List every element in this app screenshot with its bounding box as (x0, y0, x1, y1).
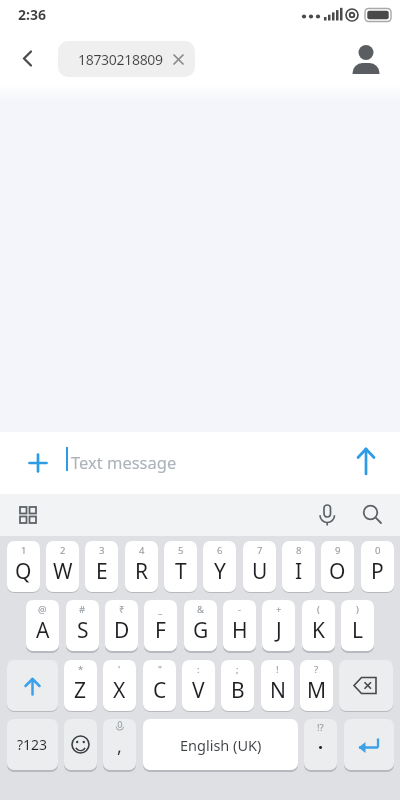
button[interactable]: _ (144, 600, 177, 651)
staticText: O (329, 557, 346, 586)
staticText: 3 (99, 544, 105, 557)
staticText: 2 (60, 544, 66, 557)
staticText: X (113, 676, 126, 705)
staticText: 1 (21, 544, 27, 557)
staticText: # (79, 603, 86, 616)
staticText: S (77, 616, 89, 645)
staticText: C (153, 676, 167, 705)
staticText: P (371, 557, 384, 586)
staticText: !? (317, 721, 324, 734)
staticText: G (193, 616, 209, 645)
button[interactable]: 0 (361, 541, 394, 592)
staticText: * (78, 663, 84, 676)
button[interactable]: @ (26, 600, 59, 651)
staticText: & (197, 603, 204, 616)
button[interactable]: : (182, 660, 215, 711)
button[interactable]: , (103, 719, 136, 770)
button[interactable] (339, 660, 393, 711)
staticText: F (155, 616, 166, 645)
staticText: E (96, 557, 108, 586)
button[interactable] (12, 499, 44, 531)
button[interactable]: + (262, 600, 295, 651)
button[interactable]: # (66, 600, 99, 651)
staticText: 6 (217, 544, 223, 557)
staticText: + (276, 603, 282, 616)
staticText: V (192, 676, 205, 705)
button[interactable]: ?123 (7, 719, 58, 770)
staticText: 18730218809 (78, 50, 163, 69)
staticText: T (175, 557, 187, 586)
button[interactable] (311, 499, 343, 531)
button[interactable]: ; (221, 660, 254, 711)
button[interactable]: ? (300, 660, 333, 711)
staticText: : (197, 663, 200, 676)
staticText: ) (356, 603, 359, 616)
button[interactable]: " (143, 660, 176, 711)
button[interactable]: 6 (203, 541, 236, 592)
staticText: 2:36 (18, 5, 46, 24)
button[interactable]: 8 (282, 541, 315, 592)
staticText: Z (74, 676, 87, 705)
staticText: ; (236, 663, 239, 676)
button[interactable] (64, 719, 97, 770)
staticText: _ (158, 603, 163, 616)
staticText: U (252, 557, 268, 586)
button[interactable]: 7 (243, 541, 276, 592)
button[interactable]: 5 (164, 541, 197, 592)
staticText: M (307, 676, 327, 705)
button[interactable]: * (64, 660, 97, 711)
button[interactable]: & (184, 600, 217, 651)
button[interactable] (344, 719, 394, 770)
button[interactable] (20, 445, 56, 481)
button[interactable]: ) (341, 600, 374, 651)
button[interactable]: 18730218809 (58, 41, 195, 77)
staticText: H (232, 616, 248, 645)
staticText: L (352, 616, 364, 645)
staticText: J (276, 616, 282, 645)
button[interactable]: ₹ (105, 600, 138, 651)
staticText: - (238, 603, 242, 616)
staticText: W (53, 557, 73, 586)
staticText: @ (38, 603, 47, 616)
button[interactable]: ! (261, 660, 294, 711)
staticText: ! (276, 663, 279, 676)
button[interactable]: 3 (85, 541, 118, 592)
staticText: Y (214, 557, 226, 586)
staticText: N (270, 676, 286, 705)
button[interactable]: 9 (321, 541, 354, 592)
staticText: 0 (375, 544, 381, 557)
staticText: A (36, 616, 50, 645)
staticText: D (114, 616, 130, 645)
button[interactable]: ' (103, 660, 136, 711)
staticText: ?123 (17, 735, 48, 754)
button[interactable]: ( (302, 600, 335, 651)
staticText: 5 (178, 544, 184, 557)
button[interactable]: !? (304, 719, 337, 770)
staticText: 8 (296, 544, 302, 557)
staticText: ₹ (119, 603, 125, 616)
staticText: 4 (139, 544, 145, 557)
staticText: . (318, 730, 324, 755)
button[interactable]: English (UK) (143, 719, 298, 770)
staticText: " (158, 663, 162, 676)
staticText: ( (317, 603, 320, 616)
button[interactable]: - (223, 600, 256, 651)
button[interactable] (347, 443, 385, 481)
staticText: , (117, 734, 122, 759)
button[interactable] (356, 499, 388, 531)
staticText: Text message (71, 451, 177, 473)
button[interactable]: 1 (7, 541, 40, 592)
button[interactable]: 4 (125, 541, 158, 592)
staticText: K (312, 616, 325, 645)
staticText: B (231, 676, 245, 705)
staticText: English (UK) (180, 735, 262, 755)
staticText: 7 (257, 544, 263, 557)
staticText: ' (118, 663, 121, 676)
button[interactable] (7, 660, 58, 711)
staticText: R (135, 557, 149, 586)
button[interactable] (346, 38, 386, 78)
button[interactable]: 2 (46, 541, 79, 592)
staticText: 9 (335, 544, 341, 557)
staticText: ? (314, 663, 319, 676)
button[interactable] (8, 38, 48, 78)
